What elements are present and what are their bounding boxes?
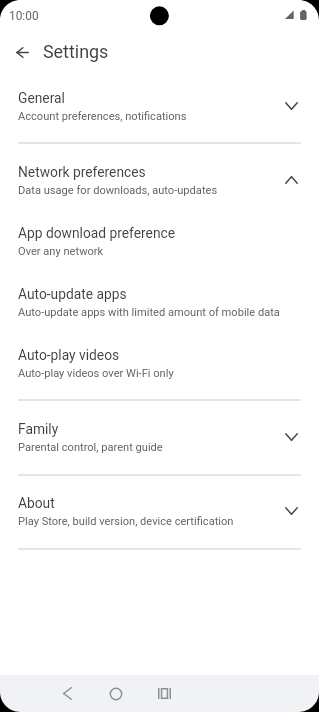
button[interactable]: About [0,489,319,532]
button[interactable]: Family [0,415,319,458]
button[interactable]: Collapse Network preferences [274,163,308,197]
button[interactable]: Recent apps [140,675,188,712]
staticText: App download preference [18,225,176,241]
staticText: Settings [43,41,109,62]
button[interactable]: Home [92,675,140,712]
button[interactable]: General [0,84,319,127]
button[interactable]: Expand Family [274,420,308,454]
staticText: 10:00 [9,9,39,23]
staticText: Auto-update apps with limited amount of … [18,306,280,319]
button[interactable]: Auto-play videos [0,341,319,384]
staticText: Play Store, build version, device certif… [18,515,234,528]
button[interactable]: Back [43,675,91,712]
staticText: Parental control, parent guide [18,441,163,454]
staticText: Data usage for downloads, auto-updates [18,184,218,197]
button[interactable]: App download preference [0,219,319,262]
staticText: About [18,495,55,511]
staticText: Network preferences [18,164,146,180]
button[interactable]: Network preferences [0,158,319,200]
staticText: Over any network [18,245,104,258]
button[interactable]: Auto-update apps [0,280,319,323]
staticText: Account preferences, notifications [18,110,187,123]
staticText: Auto-play videos [18,347,120,363]
staticText: Family [18,421,59,437]
button[interactable]: Expand General [274,89,308,123]
staticText: Auto-play videos over Wi-Fi only [18,367,174,380]
button[interactable]: Back [2,32,42,72]
staticText: General [18,90,65,106]
staticText: Auto-update apps [18,286,127,302]
button[interactable]: Expand About [274,494,308,528]
